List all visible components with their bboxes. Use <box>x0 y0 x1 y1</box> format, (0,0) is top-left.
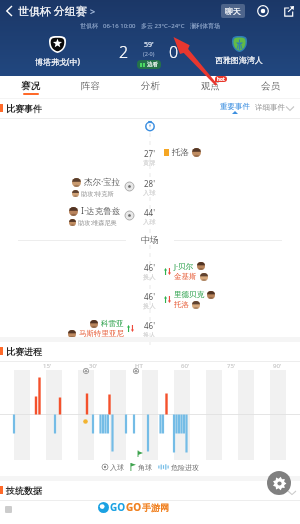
staticText: 危险进攻 <box>171 463 199 472</box>
staticText: hot <box>217 76 225 82</box>
staticText: 边看 <box>147 61 158 68</box>
staticText: 分析 <box>141 80 160 92</box>
staticText: 换人 <box>143 302 156 310</box>
staticText: 里德贝克 <box>174 290 204 299</box>
staticText: 西雅图海湾人 <box>215 55 263 65</box>
button[interactable]: Settings <box>267 471 291 495</box>
staticText: 手游网 <box>142 502 169 513</box>
staticText: 黄牌 <box>143 159 156 167</box>
button[interactable]: 重要事件 <box>220 102 250 114</box>
staticText: 博塔弗戈(中) <box>35 56 80 67</box>
button[interactable]: 聊天 <box>221 4 245 18</box>
staticText: 多云 23°C~24°C <box>141 22 185 30</box>
staticText: 90' <box>273 362 282 370</box>
staticText: 入球 <box>143 218 156 226</box>
staticText: > <box>90 5 96 17</box>
staticText: GO <box>110 500 126 514</box>
button[interactable]: 阵容 <box>60 76 120 98</box>
staticText: 15' <box>43 362 52 370</box>
staticText: GO <box>126 500 142 514</box>
staticText: 2 <box>119 41 129 63</box>
staticText: 60' <box>181 362 190 370</box>
staticText: 角球 <box>138 463 152 472</box>
staticText: 聊天 <box>225 6 241 16</box>
staticText: 46' <box>144 320 155 331</box>
staticText: 06-16 10:00 <box>103 22 136 30</box>
staticText: 46' <box>144 262 155 273</box>
staticText: 比赛进程 <box>6 346 42 357</box>
button[interactable]: 世俱杯 分组赛 <box>18 0 96 21</box>
staticText: 澜利体育场 <box>190 22 220 30</box>
staticText: 27' <box>144 148 155 159</box>
staticText: 助攻:维森尼奥 <box>78 218 117 226</box>
button[interactable]: Share <box>281 4 295 18</box>
staticText: 44' <box>144 207 155 218</box>
staticText: I·达克鲁兹 <box>81 205 121 217</box>
button[interactable]: 分析 <box>120 76 180 98</box>
button[interactable]: Expand <box>285 104 294 113</box>
staticText: 46' <box>144 291 155 302</box>
staticText: 换人 <box>143 273 156 281</box>
staticText: 换人 <box>143 331 156 339</box>
staticText: 比赛事件 <box>6 103 42 114</box>
staticText: 阵容 <box>81 80 100 92</box>
staticText: 赛况 <box>21 80 40 92</box>
staticText: 金基斯 <box>174 272 197 281</box>
staticText: 75' <box>227 362 236 370</box>
button[interactable]: 观点 <box>180 76 240 98</box>
staticText: 重要事件 <box>220 102 250 111</box>
button[interactable]: 边看 <box>137 60 161 69</box>
staticText: 杰尔·宝拉 <box>84 176 121 188</box>
button[interactable]: 赛况 <box>0 76 60 98</box>
staticText: 28' <box>144 178 155 189</box>
staticText: 科雷亚 <box>101 319 124 328</box>
staticText: 托洛 <box>172 147 189 158</box>
button[interactable]: 46' <box>0 316 300 344</box>
button[interactable]: 27' <box>0 144 300 172</box>
button[interactable]: 详细事件 <box>255 103 285 112</box>
staticText: J·贝尔 <box>174 261 194 271</box>
button[interactable]: 46' <box>0 258 300 286</box>
staticText: 入球 <box>143 189 156 197</box>
button[interactable]: 46' <box>0 287 300 315</box>
staticText: 会员 <box>261 80 280 92</box>
staticText: 入球 <box>110 463 124 472</box>
staticText: 马斯特里亚尼 <box>79 329 124 338</box>
staticText: 中场 <box>141 234 159 245</box>
staticText: 59' <box>144 40 154 50</box>
staticText: 30' <box>89 362 98 370</box>
button[interactable]: Live <box>256 4 270 18</box>
staticText: 观点 <box>201 80 220 92</box>
staticText: 托洛 <box>174 300 189 309</box>
button[interactable]: 44' <box>0 203 300 231</box>
staticText: 世俱杯 分组赛 <box>18 3 87 18</box>
staticText: (2-0) <box>143 50 155 57</box>
button[interactable]: 28' <box>0 174 300 202</box>
staticText: 技统数据 <box>6 485 42 496</box>
staticText: HT <box>135 362 143 370</box>
staticText: 0 <box>169 41 179 63</box>
button[interactable]: 会员 <box>240 76 300 98</box>
staticText: 世俱杯 <box>80 22 98 30</box>
staticText: 助攻:特克斯 <box>81 189 114 197</box>
button[interactable]: Back <box>0 0 18 21</box>
